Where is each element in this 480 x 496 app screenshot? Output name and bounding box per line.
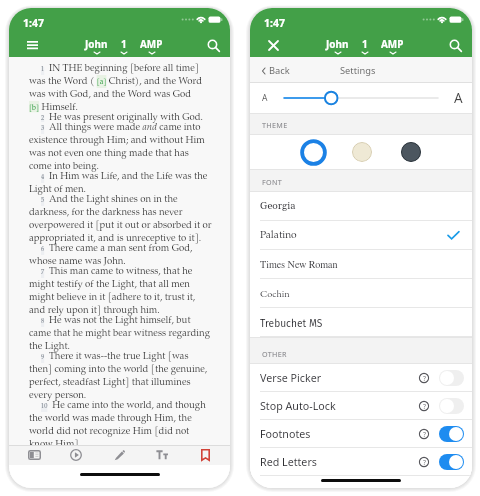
staticText: 1 IN THE beginning [before all time] was…	[29, 64, 213, 113]
staticText: 1:47	[264, 16, 285, 30]
button[interactable]: Bookmarks	[184, 445, 226, 465]
button[interactable]: Light theme	[298, 137, 328, 167]
staticText: Trebuchet MS	[260, 317, 323, 329]
button[interactable]: Stop Auto-Lock	[250, 392, 472, 420]
button[interactable]: Search	[199, 33, 227, 57]
staticText: Red Letters	[260, 455, 317, 470]
staticText: A	[262, 92, 268, 104]
button[interactable]: Palatino	[250, 221, 472, 250]
button[interactable]: Georgia	[250, 192, 472, 221]
button[interactable]: AMP	[140, 36, 163, 54]
button[interactable]: Help about Footnotes	[417, 427, 431, 441]
staticText: A	[454, 89, 463, 107]
staticText: Verse Picker	[260, 371, 322, 386]
staticText: Times New Roman	[260, 260, 338, 270]
button[interactable]: John	[85, 36, 108, 54]
staticText: AMP	[140, 37, 163, 50]
button[interactable]: Red Letters	[439, 454, 464, 470]
button[interactable]: Audio	[55, 445, 97, 465]
button[interactable]: Verse Picker	[439, 370, 464, 386]
button[interactable]: Text size	[141, 445, 183, 465]
button[interactable]: Trebuchet MS	[250, 308, 472, 337]
staticText: 3 All things were made and came into exi…	[29, 123, 213, 172]
staticText: Stop Auto-Lock	[260, 399, 336, 414]
staticText: John	[85, 37, 108, 50]
button[interactable]: Stop Auto-Lock	[439, 398, 464, 414]
button[interactable]: 1	[121, 36, 127, 54]
button[interactable]: Help about Stop Auto-Lock	[417, 399, 431, 413]
staticText: Cochin	[260, 287, 290, 300]
staticText: FONT	[262, 177, 283, 187]
staticText: ?	[423, 458, 426, 467]
staticText: 10 He came into the world, and though th…	[29, 401, 213, 450]
staticText: John	[326, 37, 349, 50]
staticText: 7 This man came to witness, that he migh…	[29, 267, 213, 316]
staticText: 1	[362, 37, 368, 50]
button[interactable]: Help about Red Letters	[417, 455, 431, 469]
button[interactable]: Sepia theme	[347, 137, 377, 167]
button[interactable]: Search	[441, 33, 469, 57]
staticText: ?	[423, 374, 426, 383]
staticText: 4 In Him was Life, and the Life was the …	[29, 172, 213, 195]
staticText: ?	[423, 430, 426, 439]
staticText: 1:47	[23, 16, 44, 30]
staticText: 2 He was present originally with God.	[29, 113, 204, 123]
button[interactable]: Footnotes	[250, 420, 472, 448]
button[interactable]: 1	[362, 36, 368, 54]
staticText: Settings	[340, 64, 376, 77]
button[interactable]: AMP	[381, 36, 404, 54]
staticText: 8 He was not the Light himself, but came…	[29, 316, 213, 352]
button[interactable]: Menu	[15, 33, 49, 57]
button[interactable]: Back	[262, 64, 290, 77]
staticText: 9 There it was--the true Light [was then…	[29, 352, 213, 401]
staticText: 6 There came a man sent from God, whose …	[29, 244, 213, 267]
staticText: ?	[423, 402, 426, 411]
staticText: Footnotes	[260, 427, 311, 442]
staticText: Georgia	[260, 200, 296, 213]
button[interactable]: John	[326, 36, 349, 54]
button[interactable]: Verse Picker	[250, 364, 472, 392]
button[interactable]: Cochin	[250, 279, 472, 308]
button[interactable]: Times New Roman	[250, 250, 472, 279]
button[interactable]: Dark theme	[396, 137, 426, 167]
staticText: 1	[121, 37, 127, 50]
staticText: Back	[269, 64, 290, 77]
staticText: Palatino	[260, 231, 297, 241]
staticText: OTHER	[262, 349, 287, 359]
staticText: AMP	[381, 37, 404, 50]
staticText: 5 And the Light shines on in the darknes…	[29, 195, 213, 244]
button[interactable]: Footnotes	[439, 426, 464, 442]
staticText: THEME	[262, 120, 288, 130]
button[interactable]: Notes	[98, 445, 140, 465]
button[interactable]: Red Letters	[250, 448, 472, 476]
button[interactable]: Help about Verse Picker	[417, 371, 431, 385]
button[interactable]: Reader	[13, 445, 55, 465]
button[interactable]: Close	[256, 33, 290, 57]
button[interactable]: Font size	[277, 88, 445, 108]
